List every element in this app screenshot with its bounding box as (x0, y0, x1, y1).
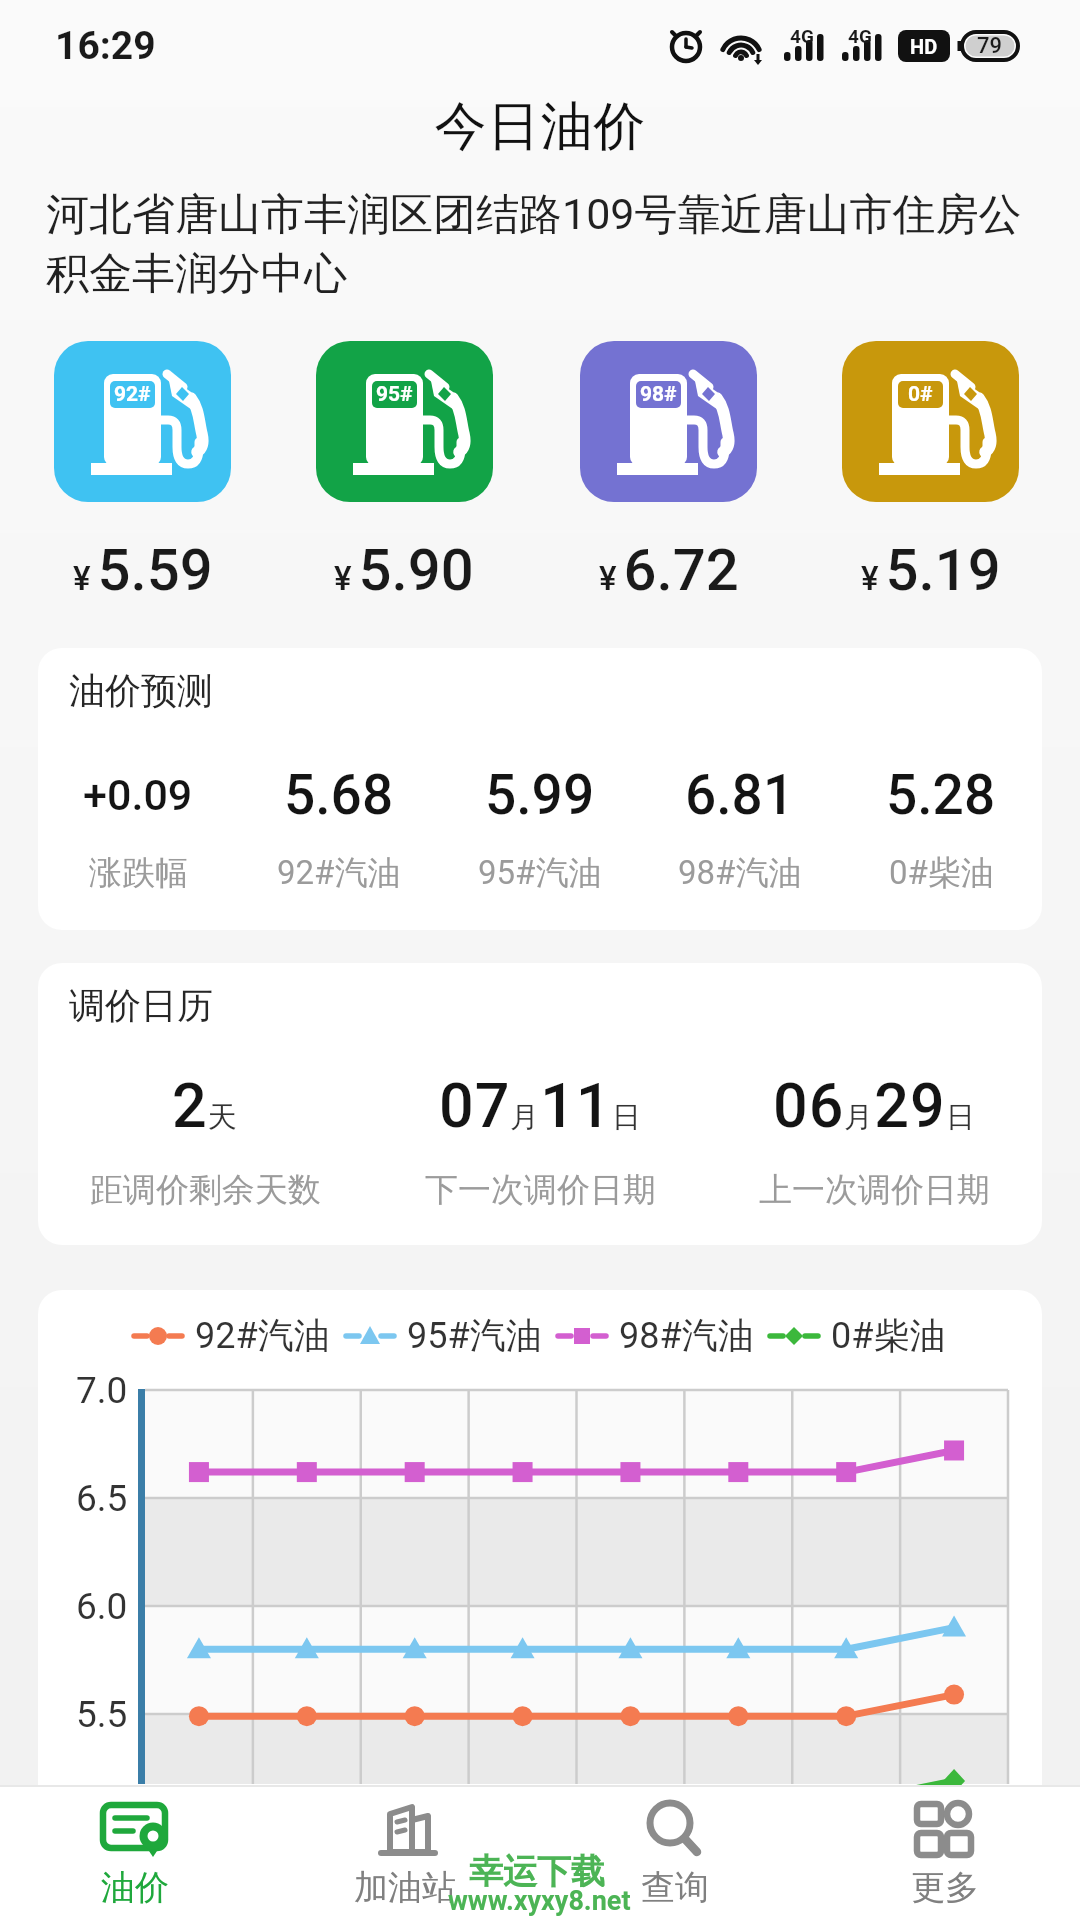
staticText: 0#柴油 (889, 852, 994, 894)
staticText: 95#汽油 (407, 1313, 542, 1358)
staticText: ¥5.19 (861, 536, 1001, 604)
button[interactable]: 油价 (45, 1802, 225, 1920)
staticText: ¥6.72 (599, 536, 739, 604)
staticText: 5.28 (886, 763, 996, 827)
button[interactable]: 更多 (855, 1802, 1035, 1920)
staticText: 更多 (911, 1866, 979, 1909)
button[interactable]: 查询 (585, 1802, 765, 1920)
staticText: 4G (848, 25, 872, 47)
staticText: 上一次调价日期 (759, 1169, 990, 1211)
staticText: 涨跌幅 (89, 852, 188, 894)
button[interactable]: 98# (580, 341, 757, 502)
staticText: 2天 (172, 1070, 238, 1141)
staticText: 6.81 (685, 763, 795, 827)
staticText: 今日油价 (434, 94, 646, 160)
staticText: +0.09 (83, 770, 193, 820)
staticText: 5.68 (284, 763, 394, 827)
staticText: 07月11日 (439, 1070, 642, 1141)
staticText: 98#汽油 (619, 1313, 754, 1358)
button[interactable]: 95# (316, 341, 493, 502)
staticText: 98#汽油 (678, 852, 802, 894)
staticText: 下一次调价日期 (425, 1169, 656, 1211)
staticText: ¥5.59 (73, 536, 213, 604)
staticText: 0#柴油 (831, 1313, 946, 1358)
staticText: 5.5 (76, 1693, 128, 1736)
staticText: 06月29日 (773, 1070, 976, 1141)
staticText: 油价预测 (69, 668, 213, 713)
staticText: 98# (640, 382, 677, 407)
staticText: 6.5 (76, 1477, 128, 1520)
staticText: 4G (790, 25, 814, 47)
staticText: 幸运下载 (469, 1850, 605, 1893)
staticText: 5.99 (485, 763, 595, 827)
staticText: 6.0 (76, 1585, 128, 1628)
staticText: 河北省唐山市丰润区团结路109号靠近唐山市住房公积金丰润分中心 (46, 188, 1036, 301)
staticText: 距调价剩余天数 (90, 1169, 321, 1211)
staticText: HD (910, 35, 938, 58)
staticText: 16:29 (55, 23, 156, 69)
staticText: 加油站 (354, 1866, 456, 1909)
staticText: 油价 (101, 1866, 169, 1909)
staticText: ¥5.90 (334, 536, 474, 604)
button[interactable]: 92# (54, 341, 231, 502)
staticText: 95# (376, 382, 413, 407)
staticText: 92#汽油 (195, 1313, 330, 1358)
staticText: 7.0 (76, 1369, 128, 1412)
staticText: 调价日历 (69, 983, 213, 1028)
staticText: 查询 (641, 1866, 709, 1909)
staticText: 79 (977, 33, 1003, 59)
button[interactable]: 加油站 (315, 1802, 495, 1920)
staticText: 95#汽油 (478, 852, 602, 894)
staticText: 0# (908, 382, 933, 407)
staticText: 92#汽油 (277, 852, 401, 894)
button[interactable]: 0# (842, 341, 1019, 502)
staticText: www.xyxy8.net (448, 1885, 631, 1917)
staticText: 92# (114, 382, 151, 407)
